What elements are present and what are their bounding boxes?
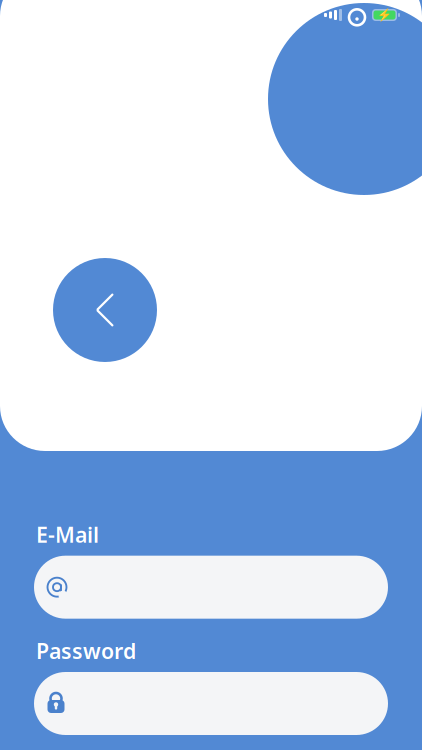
button[interactable]: E-Mail — [34, 556, 388, 619]
button[interactable]: Back — [53, 258, 157, 362]
staticText: Password — [36, 637, 136, 665]
staticText: E-Mail — [36, 520, 99, 549]
button[interactable]: Password — [34, 672, 388, 735]
staticText: ⚡ — [377, 8, 392, 22]
